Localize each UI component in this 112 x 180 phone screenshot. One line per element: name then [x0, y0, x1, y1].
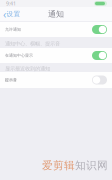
staticText: 9:41 — [6, 0, 16, 7]
button[interactable]: 在通知中心显示 — [0, 48, 112, 63]
button[interactable]: 提示音 — [0, 72, 112, 88]
button[interactable]: 允许通知 — [0, 22, 112, 37]
button[interactable]: ‹ — [0, 7, 23, 21]
staticText: 设置 — [6, 10, 20, 18]
staticText: 知识网 — [75, 159, 108, 172]
staticText: 显示最近收到的通知 — [5, 65, 50, 72]
staticText: 通知中心、横幅、提示音 — [5, 40, 60, 47]
staticText: ‹ — [3, 7, 6, 21]
staticText: 爱剪辑 — [42, 159, 75, 172]
staticText: 允许通知 — [5, 27, 21, 32]
staticText: 通知 — [48, 9, 64, 19]
staticText: 提示音 — [5, 77, 17, 82]
staticText: 在通知中心显示 — [5, 53, 33, 58]
